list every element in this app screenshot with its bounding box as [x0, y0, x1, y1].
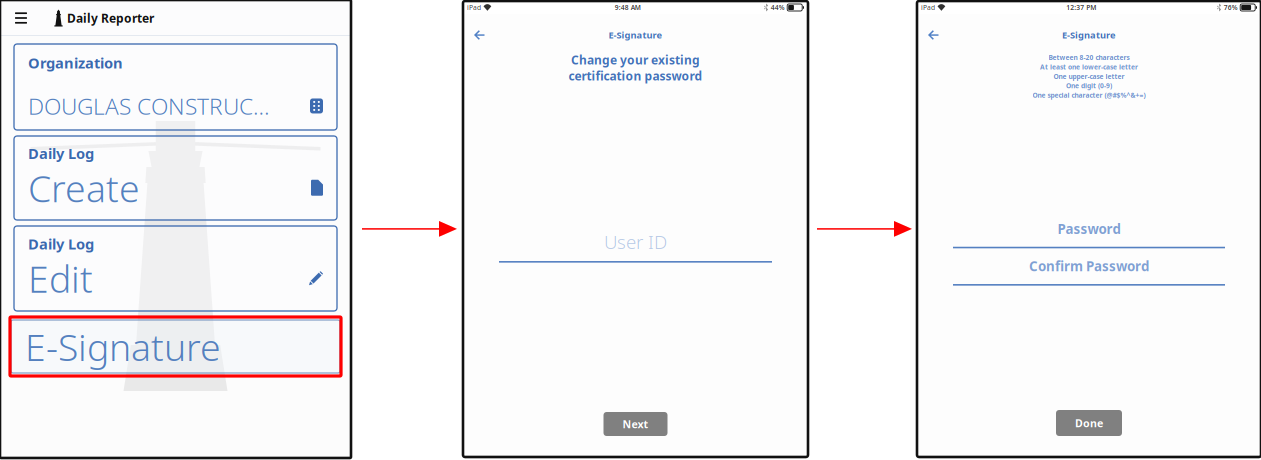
staticText: One digit (0-9): [1066, 81, 1112, 90]
staticText: iPad: [921, 3, 935, 12]
staticText: Change your existing: [571, 52, 700, 68]
button[interactable]: Back: [923, 25, 943, 45]
staticText: Password: [1057, 220, 1120, 238]
staticText: One special character (@#$%^&+=): [1032, 91, 1145, 100]
staticText: Done: [1075, 416, 1103, 430]
button[interactable]: Daily Log: [14, 136, 337, 220]
staticText: Edit: [28, 253, 93, 303]
staticText: iPad: [467, 3, 481, 12]
staticText: E-Signature: [608, 29, 662, 41]
button[interactable]: Next: [603, 412, 667, 436]
staticText: 12:37 PM: [1066, 3, 1096, 12]
button[interactable]: Done: [1056, 410, 1122, 436]
staticText: Daily Log: [28, 143, 94, 163]
staticText: Organization: [28, 53, 123, 72]
staticText: At least one lower-case letter: [1040, 62, 1138, 71]
staticText: Next: [622, 417, 648, 431]
button[interactable]: Organization: [14, 44, 337, 130]
button[interactable]: Menu: [7, 4, 35, 32]
staticText: DOUGLAS CONSTRUC…: [28, 91, 270, 121]
staticText: Daily Log: [28, 234, 94, 253]
button[interactable]: Back: [469, 25, 489, 45]
staticText: Daily Reporter: [67, 10, 154, 26]
button[interactable]: E-Signature: [11, 320, 340, 373]
staticText: User ID: [604, 229, 667, 254]
staticText: E-Signature: [1062, 29, 1116, 41]
staticText: One upper-case letter: [1053, 72, 1124, 81]
staticText: Create: [28, 163, 140, 213]
staticText: certification password: [568, 68, 702, 84]
staticText: Confirm Password: [1029, 257, 1149, 275]
staticText: 9:48 AM: [615, 3, 641, 12]
button[interactable]: Daily Log: [14, 226, 337, 311]
staticText: 44%: [771, 3, 785, 12]
staticText: 76%: [1224, 3, 1238, 12]
staticText: E-Signature: [25, 322, 221, 371]
staticText: Between 8-20 characters: [1048, 53, 1129, 62]
